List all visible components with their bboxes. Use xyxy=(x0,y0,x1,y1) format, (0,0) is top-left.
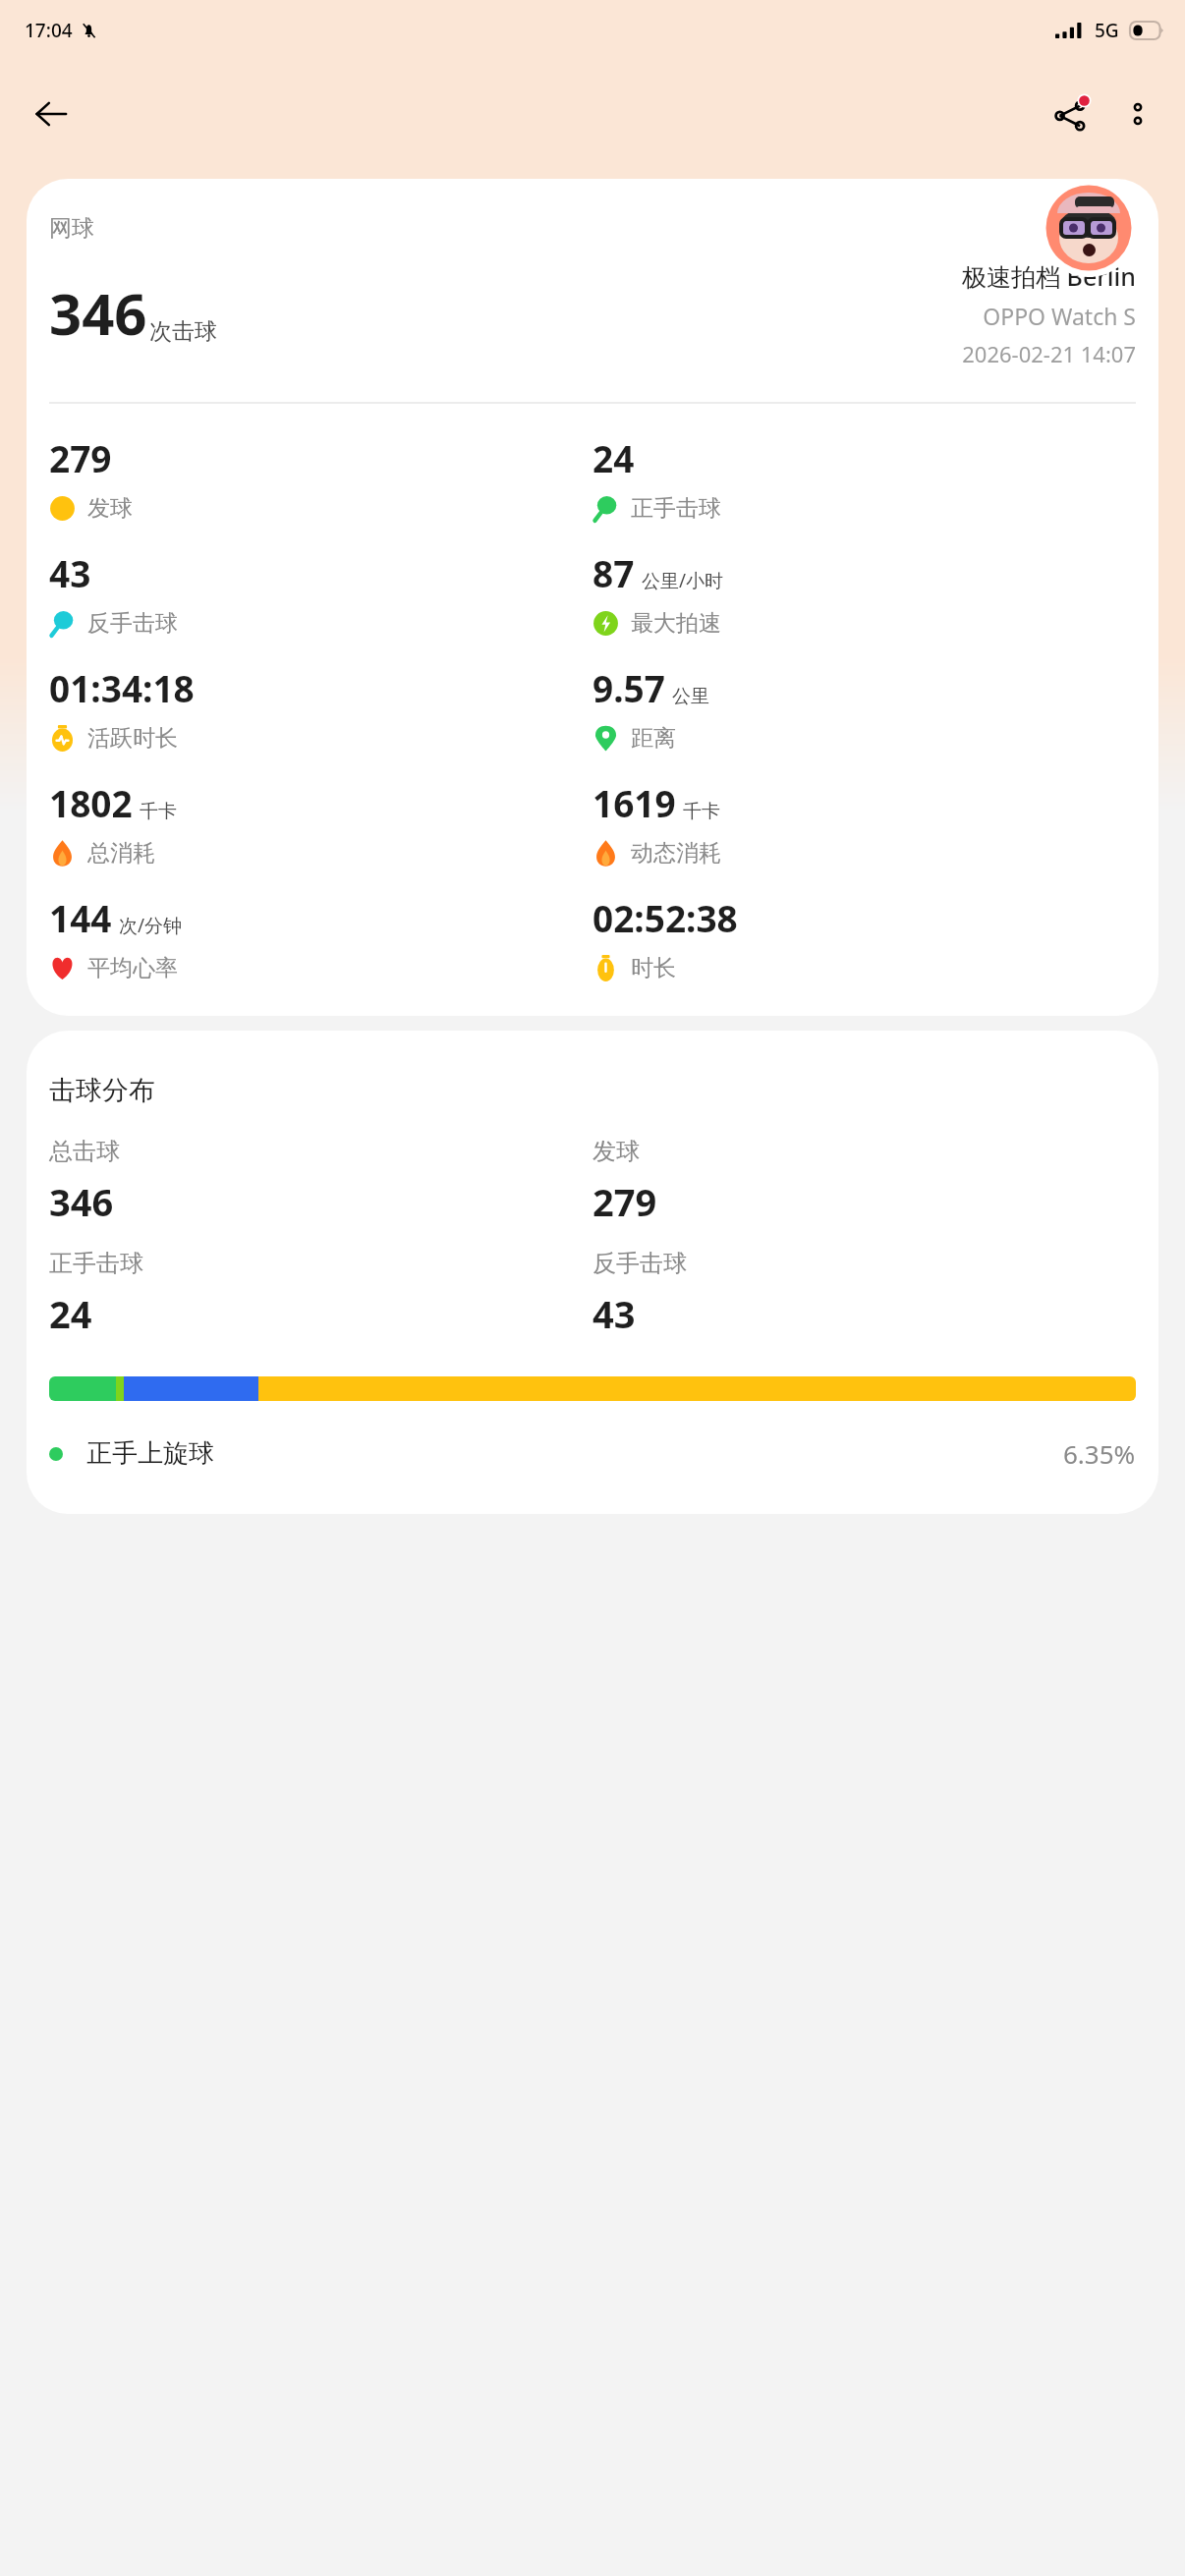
button[interactable]: 9.57 xyxy=(592,663,1136,753)
staticText: 次击球 xyxy=(149,317,217,346)
staticText: 极速拍档 Berlin xyxy=(962,259,1136,293)
staticText: 千卡 xyxy=(683,800,720,823)
staticText: 9.57 xyxy=(592,663,665,712)
button[interactable]: 01:34:18 xyxy=(49,663,592,753)
staticText: 17:04 xyxy=(25,18,73,43)
staticText: 最大拍速 xyxy=(631,609,721,638)
button[interactable]: 击球分布 xyxy=(27,1031,1158,1514)
staticText: 24 xyxy=(49,1288,92,1339)
staticText: 43 xyxy=(49,548,91,597)
button[interactable]: Share xyxy=(1038,81,1104,147)
button[interactable]: 正手击球 xyxy=(49,1249,592,1339)
staticText: 正手击球 xyxy=(631,494,721,523)
staticText: 6.35% xyxy=(1063,1436,1136,1471)
button[interactable]: 1802 xyxy=(49,778,592,868)
staticText: 87 xyxy=(592,548,635,597)
staticText: 网球 xyxy=(49,214,94,243)
staticText: 144 xyxy=(49,893,112,942)
staticText: OPPO Watch S xyxy=(983,301,1136,331)
button[interactable]: 87 xyxy=(592,548,1136,638)
staticText: 279 xyxy=(49,433,112,482)
staticText: 公里 xyxy=(672,685,709,708)
button[interactable]: 279 xyxy=(49,433,592,523)
button[interactable]: Back xyxy=(20,83,83,145)
staticText: 反手击球 xyxy=(87,609,178,638)
staticText: 距离 xyxy=(631,724,676,753)
staticText: 总击球 xyxy=(49,1137,120,1166)
staticText: 24 xyxy=(592,433,635,482)
staticText: 02:52:38 xyxy=(592,893,738,942)
button[interactable]: 24 xyxy=(592,433,1136,523)
button[interactable]: 43 xyxy=(49,548,592,638)
button[interactable]: 正手上旋球 xyxy=(49,1436,1136,1471)
staticText: 千卡 xyxy=(140,800,177,823)
staticText: 5G xyxy=(1095,18,1119,43)
staticText: 反手击球 xyxy=(592,1249,687,1278)
staticText: 击球分布 xyxy=(49,1074,155,1107)
staticText: 次/分钟 xyxy=(119,913,183,938)
staticText: 279 xyxy=(592,1176,657,1227)
staticText: 01:34:18 xyxy=(49,663,195,712)
button[interactable]: 总击球 xyxy=(49,1137,592,1227)
staticText: 2026-02-21 14:07 xyxy=(962,339,1136,368)
button[interactable]: 1619 xyxy=(592,778,1136,868)
button[interactable]: 网球 xyxy=(27,179,1158,1016)
staticText: 发球 xyxy=(592,1137,640,1166)
staticText: 正手上旋球 xyxy=(86,1437,214,1470)
staticText: 正手击球 xyxy=(49,1249,143,1278)
button[interactable]: User avatar xyxy=(1040,179,1138,277)
staticText: 时长 xyxy=(631,954,676,982)
button[interactable]: More options xyxy=(1106,83,1169,145)
staticText: 平均心率 xyxy=(87,954,178,982)
staticText: 活跃时长 xyxy=(87,724,178,753)
button[interactable]: 发球 xyxy=(592,1137,1136,1227)
button[interactable]: 02:52:38 xyxy=(592,893,1136,982)
staticText: 发球 xyxy=(87,494,133,523)
staticText: 346 xyxy=(49,274,147,352)
staticText: 动态消耗 xyxy=(631,839,721,868)
staticText: 1802 xyxy=(49,778,133,827)
staticText: 总消耗 xyxy=(87,839,155,868)
staticText: 43 xyxy=(592,1288,636,1339)
staticText: 1619 xyxy=(592,778,676,827)
button[interactable]: 144 xyxy=(49,893,592,982)
staticText: 公里/小时 xyxy=(642,568,724,593)
button[interactable]: 反手击球 xyxy=(592,1249,1136,1339)
staticText: 346 xyxy=(49,1176,114,1227)
